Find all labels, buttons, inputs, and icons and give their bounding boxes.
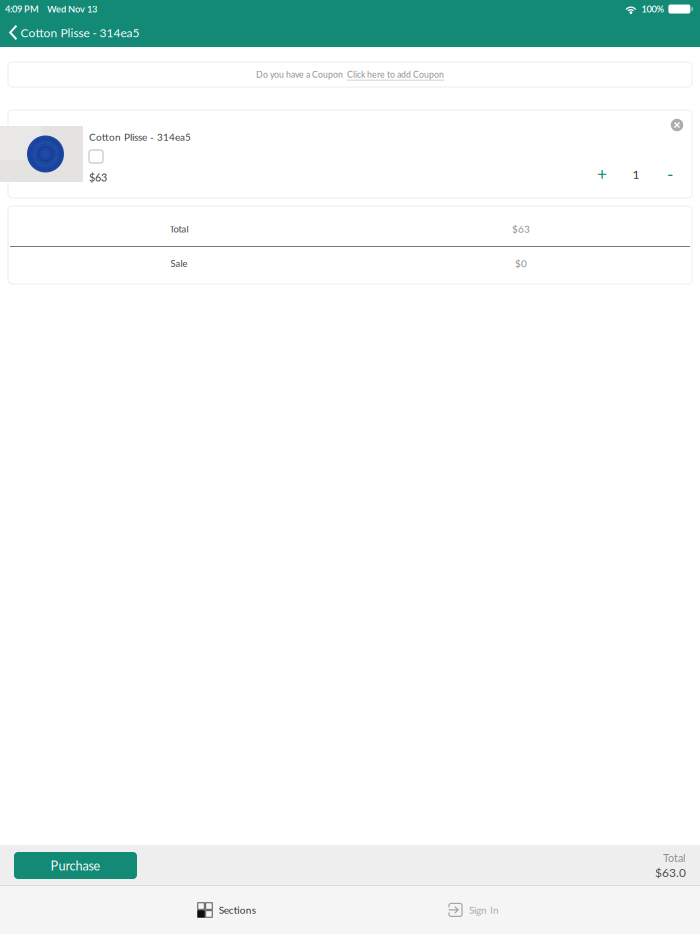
staticText: Sign In [469,904,499,916]
staticText: Wed Nov 13 [47,3,97,15]
staticText: Cotton Plisse - 314ea5 [21,25,140,40]
button[interactable]: Purchase [14,852,137,879]
button[interactable]: Remove item [666,114,688,136]
staticText: 100% [641,3,664,15]
staticText: Purchase [50,858,100,873]
staticText: 1 [632,167,639,181]
staticText: Do you have a Coupon [256,69,343,80]
staticText: $63 [89,171,107,184]
staticText: Total [169,223,188,235]
button[interactable]: Cotton Plisse - 314ea5 [0,18,150,47]
staticText: + [597,164,607,184]
button[interactable]: Sign In [403,886,543,934]
staticText: $63 [512,223,530,235]
button[interactable]: Do you have a Coupon [8,62,692,87]
staticText: $0 [515,257,527,269]
button[interactable]: Sections [156,886,296,934]
button[interactable]: Decrease quantity [657,162,683,186]
button[interactable]: Increase quantity [589,162,615,186]
staticText: Cotton Plisse - 314ea5 [89,131,191,143]
staticText: Click here to add Coupon [347,69,444,80]
staticText: 4:09 PM [5,3,39,15]
staticText: Sale [170,258,187,269]
staticText: Sections [219,904,256,916]
staticText: $63.0 [655,865,686,880]
staticText: Total [663,851,686,864]
staticText: - [667,164,673,184]
